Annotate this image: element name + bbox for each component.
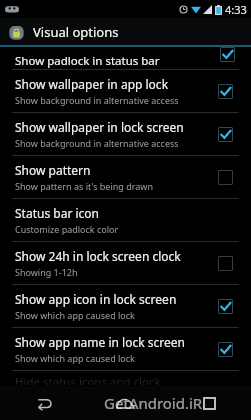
staticText: Show wallpaper in lock screen — [15, 119, 184, 135]
button[interactable]: Show app name in lock screen — [0, 328, 251, 370]
button[interactable]: Recents — [192, 386, 226, 420]
button[interactable]: Show wallpaper in lock screen — [0, 113, 251, 155]
button[interactable]: Back — [25, 386, 59, 420]
staticText: Show pattern — [15, 162, 91, 178]
staticText: Show which app caused lock — [15, 352, 135, 364]
button[interactable]: App icon — [6, 22, 26, 42]
staticText: Show background in alternative access — [15, 137, 179, 149]
staticText: Show 24h in lock screen clock — [15, 248, 181, 264]
staticText: Showing 1-12h — [15, 266, 78, 278]
staticText: Show which app caused lock — [15, 309, 135, 321]
staticText: Show wallpaper in app lock — [15, 76, 169, 92]
staticText: Show pattern as it's being drawn — [15, 180, 153, 192]
staticText: Show background in alternative access — [15, 94, 179, 106]
button[interactable]: Show 24h in lock screen clock — [0, 242, 251, 284]
button[interactable]: Show wallpaper in app lock — [0, 70, 251, 112]
staticText: Visual options — [33, 23, 119, 41]
button[interactable]: Show padlock in status bar — [0, 47, 251, 69]
staticText: Show app icon in lock screen — [15, 291, 177, 307]
staticText: GetAndroid.iR — [104, 393, 203, 413]
staticText: Status bar icon — [15, 205, 99, 221]
button[interactable]: Status bar icon — [0, 199, 251, 241]
staticText: Hide status icons and clock — [15, 374, 161, 385]
button[interactable]: Home — [108, 386, 142, 420]
staticText: Show app name in lock screen — [15, 334, 185, 350]
button[interactable]: Show app icon in lock screen — [0, 285, 251, 327]
button[interactable]: Show pattern — [0, 156, 251, 198]
staticText: Show padlock in status bar — [15, 53, 160, 69]
staticText: Customize padlock color — [15, 223, 119, 235]
staticText: 4:33 — [225, 2, 247, 17]
